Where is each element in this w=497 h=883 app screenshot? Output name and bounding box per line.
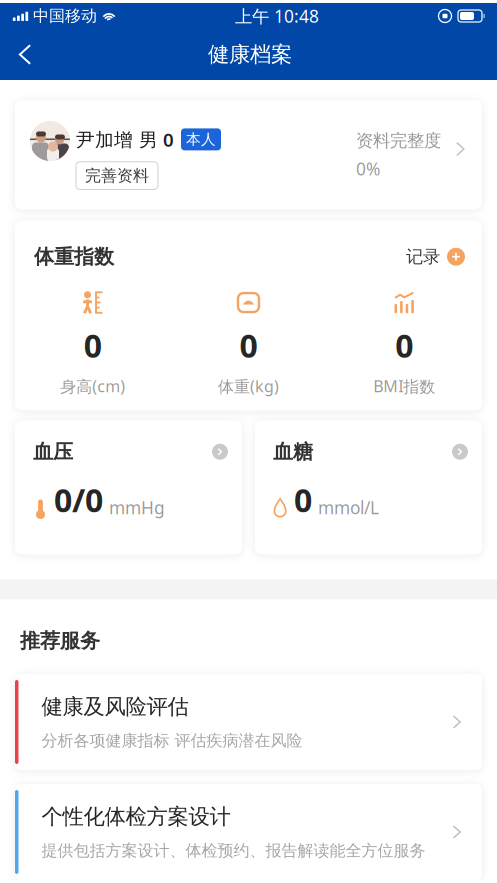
staticText: mmol/L bbox=[318, 496, 379, 519]
staticText: 健康及风险评估 bbox=[41, 694, 188, 720]
staticText: 0/0 bbox=[54, 478, 103, 521]
staticText: 身高(cm) bbox=[60, 375, 125, 397]
button[interactable]: 返回 bbox=[3, 32, 47, 76]
staticText: 尹加增 男 0 bbox=[76, 127, 174, 152]
staticText: 0 bbox=[294, 478, 312, 521]
staticText: 血压 bbox=[33, 439, 73, 464]
staticText: mmHg bbox=[109, 496, 165, 519]
button[interactable]: 尹加增 男 0 bbox=[15, 100, 482, 209]
staticText: 记录 bbox=[406, 246, 440, 267]
staticText: BMI指数 bbox=[373, 375, 435, 397]
button[interactable]: 健康及风险评估 bbox=[15, 674, 482, 770]
staticText: 0% bbox=[356, 157, 380, 180]
staticText: 分析各项健康指标 评估疾病潜在风险 bbox=[41, 731, 302, 750]
staticText: 0 bbox=[395, 324, 413, 366]
staticText: 上午 10:48 bbox=[235, 4, 319, 27]
staticText: 健康档案 bbox=[208, 41, 292, 68]
staticText: 提供包括方案设计、体检预约、报告解读能全方位服务 bbox=[41, 841, 425, 860]
staticText: 0 bbox=[84, 324, 102, 366]
button[interactable]: 个性化体检方案设计 bbox=[15, 784, 482, 880]
staticText: 资料完整度 bbox=[356, 130, 441, 151]
button[interactable]: 血压 bbox=[15, 420, 242, 554]
staticText: 体重指数 bbox=[34, 244, 114, 269]
staticText: 完善资料 bbox=[85, 166, 149, 185]
staticText: 体重(kg) bbox=[218, 375, 279, 397]
staticText: 推荐服务 bbox=[20, 628, 100, 653]
staticText: 本人 bbox=[186, 130, 216, 148]
button[interactable]: 血糖 bbox=[255, 420, 482, 554]
staticText: 血糖 bbox=[273, 439, 313, 464]
staticText: 个性化体检方案设计 bbox=[41, 804, 230, 830]
button[interactable]: 记录 bbox=[406, 246, 465, 267]
staticText: 中国移动 bbox=[33, 6, 97, 26]
staticText: 0 bbox=[239, 324, 257, 366]
